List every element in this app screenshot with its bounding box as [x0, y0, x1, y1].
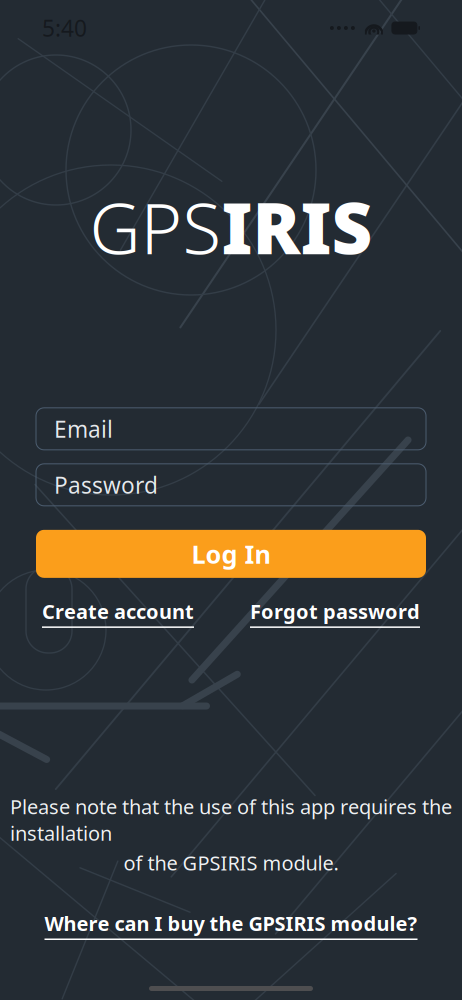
- staticText: of the GPSIRIS module.: [123, 849, 338, 876]
- staticText: Forgot password: [250, 598, 420, 624]
- button[interactable]: Create account: [42, 598, 194, 628]
- staticText: Please note that the use of this app req…: [10, 793, 452, 846]
- staticText: IRIS: [221, 180, 372, 274]
- staticText: Where can I buy the GPSIRIS module?: [44, 910, 417, 936]
- staticText: Email: [54, 414, 113, 444]
- staticText: Password: [54, 470, 158, 500]
- button[interactable]: Log In: [36, 530, 426, 578]
- button[interactable]: Where can I buy the GPSIRIS module?: [44, 910, 417, 940]
- staticText: GPS: [89, 180, 221, 274]
- staticText: 5:40: [42, 13, 87, 43]
- staticText: Log In: [191, 537, 270, 571]
- button[interactable]: Forgot password: [250, 598, 420, 628]
- staticText: Create account: [42, 598, 194, 624]
